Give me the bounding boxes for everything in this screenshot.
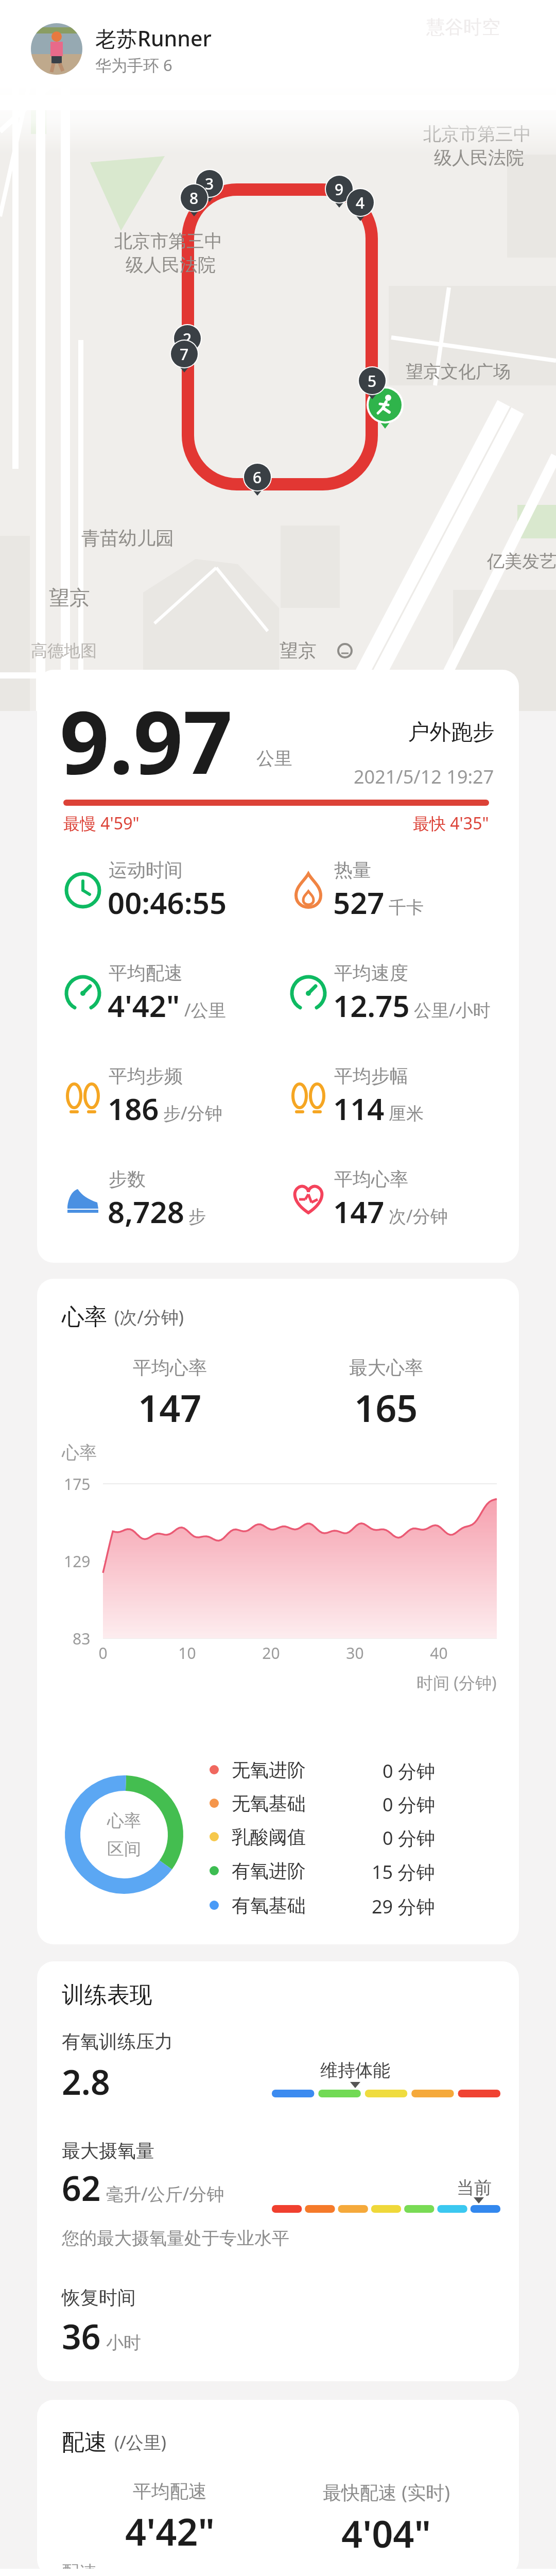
staticText: 望京 bbox=[280, 639, 317, 662]
staticText: 区间 bbox=[107, 1838, 141, 1860]
staticText: 3 bbox=[205, 173, 214, 194]
staticText: 4'42" bbox=[108, 985, 180, 1026]
staticText: 36 bbox=[62, 2313, 101, 2359]
staticText: 186 bbox=[108, 1088, 159, 1129]
staticText: 527 bbox=[333, 882, 385, 923]
staticText: 乳酸阈值 bbox=[232, 1825, 306, 1849]
staticText: 级人民法院 bbox=[434, 146, 524, 169]
staticText: 北京市第三中 bbox=[423, 123, 531, 145]
staticText: 165 bbox=[354, 1382, 418, 1433]
staticText: 步 bbox=[188, 1206, 206, 1228]
staticText: 0 bbox=[98, 1642, 108, 1664]
staticText: 次/分钟 bbox=[389, 1204, 448, 1228]
staticText: 5 bbox=[368, 370, 377, 392]
staticText: 平均配速 bbox=[133, 2480, 207, 2503]
staticText: 平均速度 bbox=[334, 961, 408, 985]
staticText: 最快配速 (实时) bbox=[323, 2480, 450, 2505]
staticText: 8 bbox=[189, 188, 199, 209]
staticText: 平均步频 bbox=[109, 1064, 183, 1088]
staticText: (/公里) bbox=[114, 2430, 167, 2454]
staticText: 最大摄氧量 bbox=[62, 2139, 154, 2162]
staticText: 62 bbox=[62, 2164, 101, 2211]
staticText: 慧谷时空 bbox=[426, 15, 500, 39]
staticText: 北京市第三中 bbox=[114, 230, 222, 252]
button[interactable]: 配速 bbox=[37, 2400, 519, 2576]
staticText: 步数 bbox=[109, 1167, 146, 1191]
staticText: 9 bbox=[335, 179, 344, 200]
staticText: 平均步幅 bbox=[334, 1064, 408, 1088]
staticText: 30 bbox=[346, 1642, 364, 1664]
staticText: 0 分钟 bbox=[383, 1758, 435, 1784]
staticText: 2021/5/12 19:27 bbox=[354, 764, 494, 789]
staticText: (次/分钟) bbox=[114, 1305, 184, 1329]
staticText: 4'04" bbox=[341, 2508, 431, 2558]
button[interactable]: 北京市第三中 bbox=[0, 0, 556, 711]
staticText: 2 bbox=[183, 328, 192, 349]
staticText: 时间 (分钟) bbox=[416, 1671, 497, 1694]
staticText: 20 bbox=[262, 1642, 280, 1664]
staticText: 厘米 bbox=[389, 1103, 424, 1125]
staticText: 有氧基础 bbox=[232, 1894, 306, 1917]
staticText: 配速 bbox=[62, 2561, 97, 2576]
staticText: 0 分钟 bbox=[383, 1825, 435, 1851]
staticText: 2.8 bbox=[62, 2058, 110, 2105]
staticText: 0 分钟 bbox=[383, 1792, 435, 1817]
staticText: /公里 bbox=[184, 998, 226, 1022]
staticText: 00:46:55 bbox=[108, 882, 227, 923]
staticText: 平均配速 bbox=[109, 961, 183, 985]
staticText: 最慢 4'59" bbox=[63, 812, 140, 835]
staticText: 175 bbox=[64, 1473, 91, 1495]
staticText: 83 bbox=[73, 1628, 91, 1649]
button[interactable]: 训练表现 bbox=[37, 1961, 519, 2381]
staticText: 老苏Runner bbox=[95, 24, 212, 53]
staticText: 户外跑步 bbox=[408, 719, 494, 746]
staticText: 最大心率 bbox=[349, 1356, 423, 1379]
staticText: 9.97 bbox=[60, 681, 233, 799]
staticText: 运动时间 bbox=[109, 858, 183, 882]
staticText: 步/分钟 bbox=[163, 1101, 222, 1125]
staticText: 热量 bbox=[334, 858, 371, 882]
staticText: 维持体能 bbox=[320, 2059, 390, 2081]
button[interactable]: 心率 bbox=[37, 1279, 519, 1944]
staticText: 当前 bbox=[457, 2177, 492, 2199]
staticText: 级人民法院 bbox=[126, 253, 216, 276]
staticText: 训练表现 bbox=[62, 1981, 152, 2009]
staticText: 7 bbox=[180, 344, 189, 365]
staticText: 望京 bbox=[49, 585, 90, 611]
staticText: 心率 bbox=[107, 1810, 141, 1832]
staticText: 恢复时间 bbox=[62, 2286, 136, 2309]
staticText: 8,728 bbox=[108, 1191, 184, 1232]
staticText: 40 bbox=[430, 1642, 448, 1664]
staticText: 147 bbox=[138, 1382, 202, 1433]
button[interactable] bbox=[31, 23, 82, 75]
staticText: 15 分钟 bbox=[372, 1859, 435, 1885]
staticText: 小时 bbox=[106, 2332, 141, 2354]
staticText: 147 bbox=[333, 1191, 385, 1232]
staticText: 12.75 bbox=[333, 985, 410, 1026]
staticText: 29 分钟 bbox=[372, 1894, 435, 1919]
staticText: 6 bbox=[253, 467, 262, 488]
staticText: 最快 4'35" bbox=[413, 812, 489, 835]
staticText: 亿美发艺 bbox=[487, 550, 556, 572]
staticText: 有氧进阶 bbox=[232, 1859, 306, 1883]
staticText: 无氧基础 bbox=[232, 1792, 306, 1815]
button[interactable]: 9.97 bbox=[37, 670, 519, 1263]
staticText: 4 bbox=[356, 192, 365, 213]
staticText: 114 bbox=[333, 1088, 385, 1129]
staticText: 青苗幼儿园 bbox=[81, 527, 174, 550]
staticText: 配速 bbox=[62, 2428, 107, 2456]
staticText: 毫升/公斤/分钟 bbox=[106, 2182, 224, 2206]
staticText: 望京文化广场 bbox=[406, 361, 511, 383]
staticText: 华为手环 6 bbox=[95, 54, 172, 76]
staticText: 千卡 bbox=[389, 896, 424, 919]
staticText: 平均心率 bbox=[334, 1167, 408, 1191]
staticText: 平均心率 bbox=[133, 1356, 207, 1379]
staticText: 公里/小时 bbox=[414, 998, 491, 1022]
staticText: 4'42" bbox=[125, 2506, 215, 2556]
staticText: 您的最大摄氧量处于专业水平 bbox=[62, 2227, 289, 2249]
staticText: 有氧训练压力 bbox=[62, 2030, 173, 2053]
staticText: 129 bbox=[64, 1551, 91, 1572]
staticText: 公里 bbox=[256, 747, 292, 770]
staticText: 10 bbox=[178, 1642, 196, 1664]
staticText: 无氧进阶 bbox=[232, 1758, 306, 1782]
